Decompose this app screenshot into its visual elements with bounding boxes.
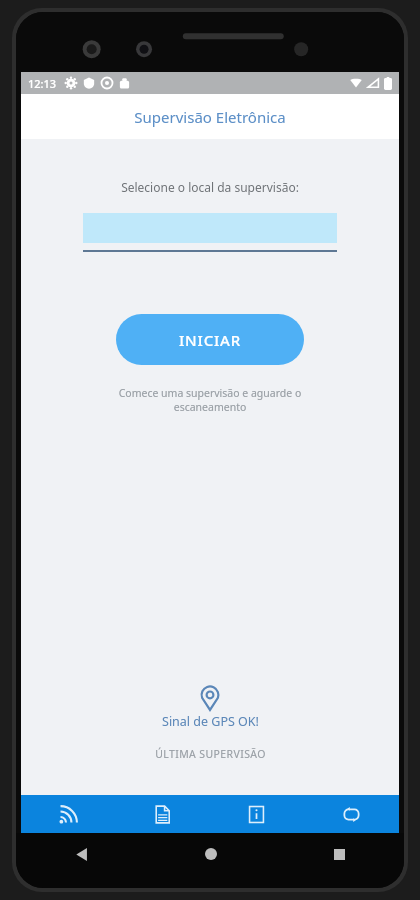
button[interactable]: Documents (115, 795, 209, 833)
button[interactable]: Signal (21, 795, 115, 833)
staticText: Supervisão Eletrônica (134, 107, 286, 127)
staticText: INICIAR (179, 330, 242, 350)
button[interactable] (83, 213, 337, 252)
button[interactable]: Information (209, 795, 304, 833)
button[interactable]: Sync (304, 795, 399, 833)
button[interactable]: Recent apps (275, 833, 404, 875)
staticText: 12:13 (28, 76, 57, 91)
staticText: Selecione o local da supervisão: (121, 179, 299, 195)
button[interactable]: INICIAR (116, 314, 304, 365)
staticText: ÚLTIMA SUPERVISÃO (155, 747, 266, 761)
staticText: Comece uma supervisão e aguarde o escane… (99, 386, 321, 414)
button[interactable]: Back (16, 833, 146, 875)
staticText: Sinal de GPS OK! (162, 713, 259, 730)
other: GPS signal (200, 685, 220, 711)
button[interactable]: Home (146, 833, 275, 875)
